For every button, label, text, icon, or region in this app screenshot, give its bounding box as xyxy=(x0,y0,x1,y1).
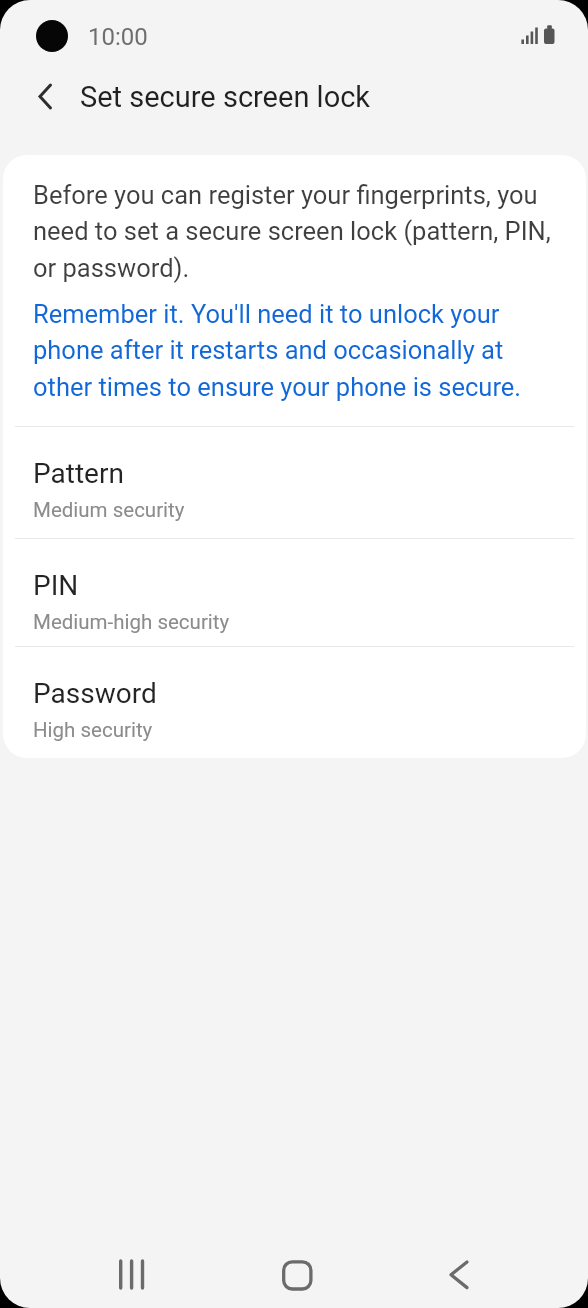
staticText: Medium-high security xyxy=(33,610,230,634)
button[interactable]: PIN xyxy=(3,538,586,646)
staticText: High security xyxy=(33,718,153,742)
staticText: Remember it. You'll need it to unlock yo… xyxy=(33,299,522,403)
button[interactable] xyxy=(427,1243,491,1307)
staticText: Pattern xyxy=(33,457,124,490)
staticText: Set secure screen lock xyxy=(80,80,371,114)
button[interactable] xyxy=(99,1243,163,1307)
staticText: Medium security xyxy=(33,498,185,522)
staticText: PIN xyxy=(33,569,79,602)
button[interactable]: Password xyxy=(3,646,586,758)
staticText: 10:00 xyxy=(88,23,148,51)
button[interactable] xyxy=(22,72,74,124)
staticText: Password xyxy=(33,677,157,710)
button[interactable]: Pattern xyxy=(3,426,586,538)
staticText: Before you can register your fingerprint… xyxy=(33,180,551,284)
button[interactable] xyxy=(265,1243,329,1307)
